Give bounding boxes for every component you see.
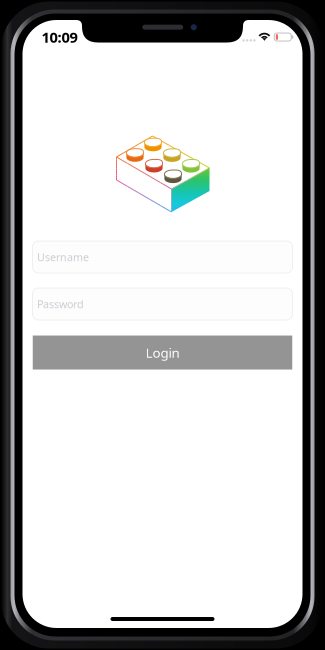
staticText: Login [145,344,179,361]
button[interactable]: Login [33,335,292,369]
staticText: 10:09 [41,27,77,47]
staticText: Password [37,297,84,311]
staticText: Username [37,250,89,264]
